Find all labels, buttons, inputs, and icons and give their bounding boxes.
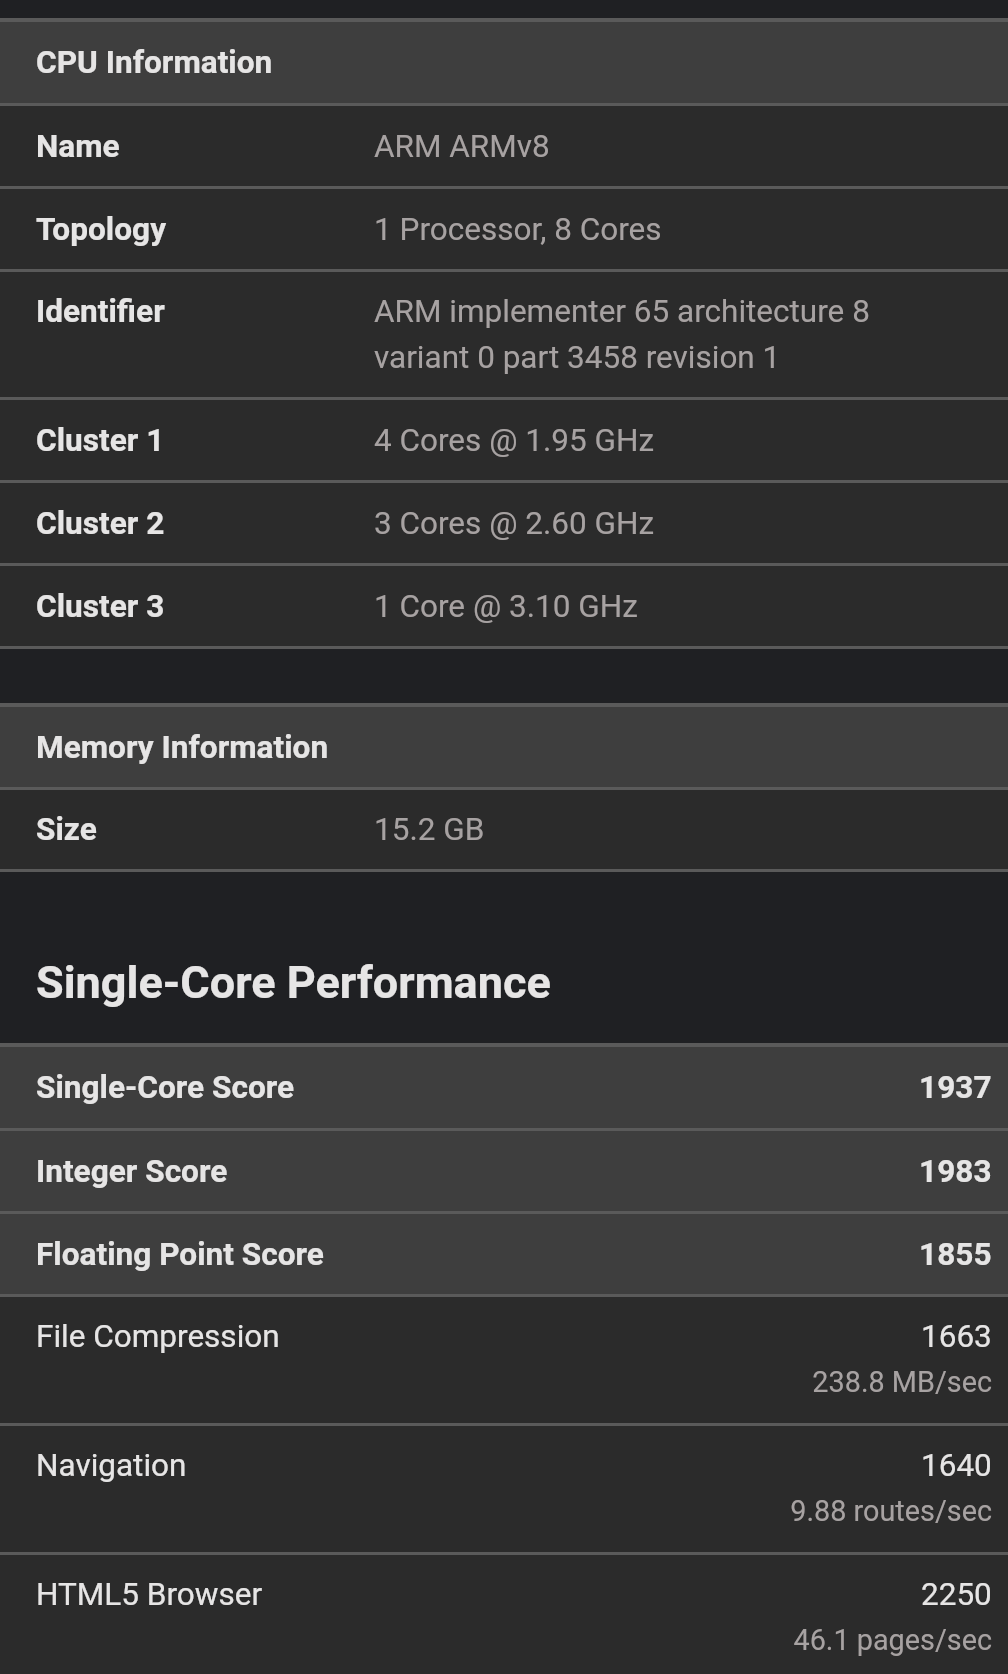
- button[interactable]: Cluster 2: [0, 483, 1008, 566]
- staticText: Floating Point Score: [36, 1236, 324, 1273]
- staticText: Memory Information: [36, 729, 329, 766]
- staticText: Cluster 2: [36, 505, 165, 542]
- staticText: Cluster 1: [36, 422, 165, 459]
- button[interactable]: CPU Information: [0, 22, 1008, 106]
- staticText: 1 Core @ 3.10 GHz: [374, 588, 638, 625]
- staticText: 2250: [921, 1576, 992, 1613]
- staticText: ARM ARMv8: [374, 128, 550, 165]
- button[interactable]: HTML5 Browser: [0, 1555, 1008, 1674]
- button[interactable]: Integer Score: [0, 1131, 1008, 1214]
- staticText: 1983: [919, 1153, 992, 1190]
- staticText: HTML5 Browser: [36, 1576, 263, 1613]
- staticText: Name: [36, 128, 120, 165]
- staticText: 1937: [919, 1069, 992, 1106]
- staticText: Single-Core Score: [36, 1069, 295, 1106]
- button[interactable]: Memory Information: [0, 707, 1008, 790]
- staticText: File Compression: [36, 1318, 280, 1355]
- button[interactable]: File Compression: [0, 1297, 1008, 1426]
- staticText: Single-Core Performance: [36, 956, 551, 1009]
- staticText: 4 Cores @ 1.95 GHz: [374, 422, 655, 459]
- button[interactable]: Name: [0, 106, 1008, 189]
- button[interactable]: Cluster 1: [0, 400, 1008, 483]
- staticText: 1640: [921, 1447, 992, 1484]
- staticText: 46.1 pages/sec: [36, 1623, 992, 1657]
- button[interactable]: Identifier: [0, 272, 1008, 400]
- button[interactable]: Cluster 3: [0, 566, 1008, 649]
- staticText: 3 Cores @ 2.60 GHz: [374, 505, 655, 542]
- staticText: 1663: [921, 1318, 992, 1355]
- staticText: ARM implementer 65 architecture 8 varian…: [374, 293, 870, 376]
- staticText: 1855: [919, 1236, 992, 1273]
- staticText: Topology: [36, 211, 167, 248]
- staticText: Navigation: [36, 1447, 187, 1484]
- staticText: Cluster 3: [36, 588, 165, 625]
- button[interactable]: Size: [0, 790, 1008, 872]
- button[interactable]: Topology: [0, 189, 1008, 272]
- staticText: 238.8 MB/sec: [36, 1365, 992, 1399]
- staticText: 9.88 routes/sec: [36, 1494, 992, 1528]
- button[interactable]: Floating Point Score: [0, 1214, 1008, 1297]
- staticText: Size: [36, 811, 97, 848]
- button[interactable]: Navigation: [0, 1426, 1008, 1555]
- staticText: 15.2 GB: [374, 811, 485, 848]
- staticText: 1 Processor, 8 Cores: [374, 211, 662, 248]
- staticText: Identifier: [36, 293, 165, 330]
- staticText: CPU Information: [36, 44, 273, 81]
- staticText: Integer Score: [36, 1153, 228, 1190]
- button[interactable]: Single-Core Score: [0, 1047, 1008, 1131]
